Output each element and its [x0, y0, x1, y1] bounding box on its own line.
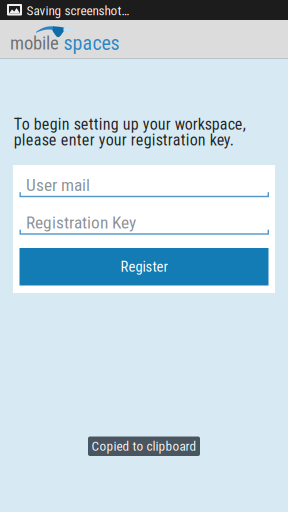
staticText: spaces: [63, 31, 119, 55]
button[interactable]: User mail: [19, 173, 269, 197]
staticText: Saving screenshot…: [26, 3, 129, 19]
staticText: please enter your registration key.: [14, 131, 234, 150]
staticText: User mail: [26, 175, 90, 195]
button[interactable]: Registration Key: [19, 210, 269, 234]
staticText: To begin setting up your workspace,: [14, 115, 246, 134]
button[interactable]: Register: [19, 248, 268, 285]
staticText: Registration Key: [26, 212, 136, 233]
staticText: mobile: [10, 32, 59, 54]
staticText: Register: [120, 258, 167, 275]
staticText: Copied to clipboard: [91, 438, 196, 454]
